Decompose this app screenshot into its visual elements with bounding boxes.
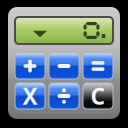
button[interactable]: Multiply	[15, 83, 45, 109]
staticText: C	[90, 81, 105, 111]
button[interactable]: Clear	[83, 83, 113, 109]
button[interactable]: Equals	[83, 53, 113, 79]
button[interactable]: Add	[15, 53, 45, 79]
button[interactable]: Divide	[49, 83, 79, 109]
staticText: X	[22, 81, 37, 111]
button[interactable]: Subtract	[49, 53, 79, 79]
